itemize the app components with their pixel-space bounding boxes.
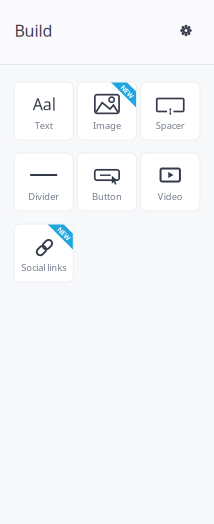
- staticText: NEW: [56, 229, 71, 238]
- button[interactable]: Social links: [14, 224, 73, 282]
- staticText: Social links: [21, 261, 66, 274]
- button[interactable]: Button: [77, 153, 137, 211]
- button[interactable]: Divider: [14, 153, 73, 211]
- staticText: Spacer: [156, 119, 185, 132]
- staticText: Aa: [33, 93, 52, 115]
- staticText: Divider: [28, 190, 59, 203]
- button[interactable]: Aa: [14, 82, 73, 140]
- button[interactable]: Image: [77, 82, 137, 140]
- staticText: Build: [14, 20, 52, 41]
- staticText: NEW: [120, 87, 135, 96]
- staticText: Video: [158, 190, 183, 203]
- button[interactable]: Settings: [171, 17, 201, 47]
- staticText: Image: [93, 119, 121, 132]
- staticText: Button: [92, 190, 122, 203]
- button[interactable]: Video: [141, 153, 200, 211]
- staticText: Text: [35, 119, 53, 132]
- button[interactable]: Spacer: [141, 82, 200, 140]
